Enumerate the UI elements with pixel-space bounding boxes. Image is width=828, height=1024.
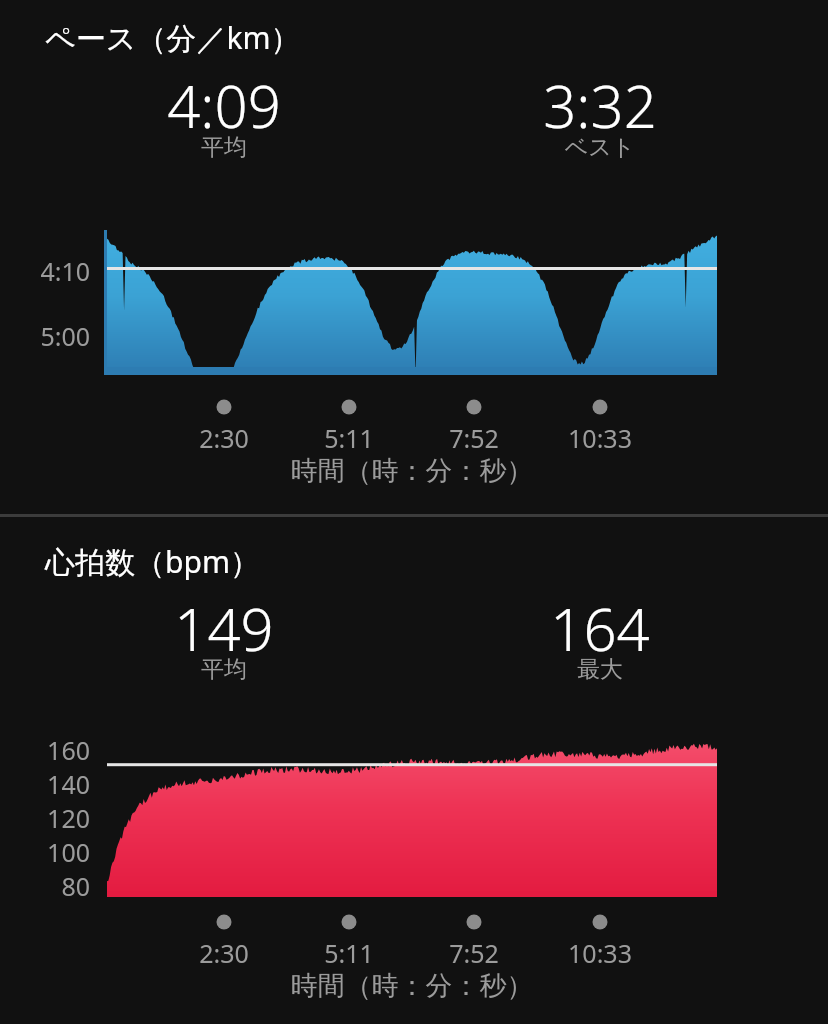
staticText: 心拍数（bpm） [45, 541, 465, 582]
button[interactable]: ペース（分／km） [0, 0, 828, 1024]
staticText: 5:11 [249, 936, 449, 970]
staticText: 平均 [14, 655, 434, 684]
staticText: 5:00 [0, 319, 90, 353]
staticText: 2:30 [124, 421, 324, 455]
staticText: 最大 [390, 655, 810, 684]
staticText: 164 [390, 589, 810, 668]
staticText: 時間（時：分：秒） [202, 454, 622, 488]
staticText: 100 [0, 835, 90, 869]
staticText: 10:33 [500, 936, 700, 970]
staticText: 10:33 [500, 421, 700, 455]
staticText: 160 [0, 733, 90, 767]
staticText: ペース（分／km） [45, 17, 465, 58]
staticText: 140 [0, 767, 90, 801]
staticText: 5:11 [249, 421, 449, 455]
staticText: 80 [0, 869, 90, 903]
staticText: ベスト [390, 133, 810, 162]
staticText: 149 [14, 589, 434, 668]
staticText: 時間（時：分：秒） [202, 969, 622, 1003]
staticText: 7:52 [374, 936, 574, 970]
staticText: 3:32 [390, 66, 810, 145]
staticText: 120 [0, 801, 90, 835]
staticText: 4:09 [14, 66, 434, 145]
staticText: 2:30 [124, 936, 324, 970]
staticText: 4:10 [0, 254, 90, 288]
staticText: 7:52 [374, 421, 574, 455]
staticText: 平均 [14, 133, 434, 162]
